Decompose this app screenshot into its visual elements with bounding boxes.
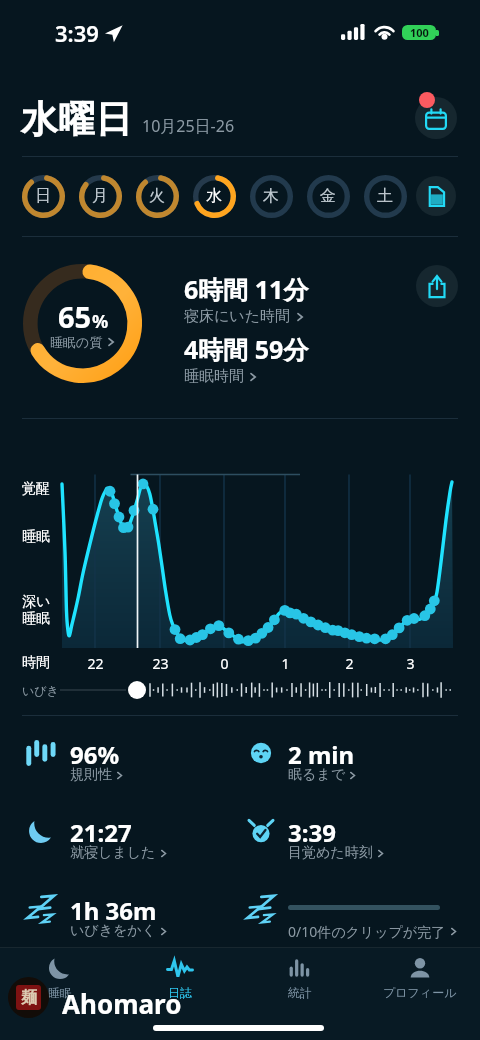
staticText: % [92, 309, 109, 334]
button[interactable]: 睡眠 [10, 956, 110, 1006]
button[interactable]: Notes [410, 170, 462, 222]
staticText: 22 [87, 654, 104, 673]
staticText: 0/10件のクリップが完了 [288, 922, 446, 941]
staticText: 4時間 59分 [184, 332, 309, 366]
staticText: 金 [320, 186, 336, 206]
staticText: 睡眠時間 [184, 367, 244, 386]
staticText: 1 [281, 654, 290, 673]
button[interactable]: 木 [245, 170, 297, 222]
button[interactable]: Share [416, 265, 458, 307]
staticText: 10月25日-26 [142, 115, 235, 137]
button[interactable]: 2 min [240, 725, 480, 797]
staticText: 時間 [22, 654, 50, 672]
button[interactable]: 21:27 [0, 803, 240, 875]
staticText: 水 [206, 186, 222, 206]
staticText: 麺 [21, 988, 37, 1008]
staticText: 土 [377, 186, 393, 206]
button[interactable]: 3:39 [240, 803, 480, 875]
staticText: 月 [92, 186, 108, 206]
staticText: 深い [22, 593, 51, 611]
staticText: 木 [263, 186, 279, 206]
staticText: 3 [406, 654, 415, 673]
button[interactable]: Play snoring audio [128, 681, 146, 699]
staticText: プロフィール [383, 985, 457, 1000]
staticText: 3:39 [288, 816, 336, 849]
button[interactable]: Calendar [415, 97, 457, 139]
staticText: 就寝しました [70, 844, 156, 862]
staticText: 統計 [288, 985, 312, 1000]
button[interactable]: 日誌 [130, 956, 230, 1006]
staticText: 2 [345, 654, 354, 673]
staticText: 21:27 [70, 816, 132, 849]
button[interactable]: 土 [359, 170, 411, 222]
button[interactable]: 月 [74, 170, 126, 222]
staticText: 眠るまで [288, 766, 345, 784]
staticText: 6時間 11分 [184, 272, 309, 306]
staticText: 100 [410, 25, 429, 40]
staticText: 睡眠 [22, 528, 50, 546]
staticText: 日 [35, 186, 51, 206]
button[interactable]: 日 [17, 170, 69, 222]
staticText: 96% [70, 738, 120, 771]
staticText: 日誌 [168, 985, 192, 1000]
staticText: 睡眠 [48, 985, 72, 1000]
button[interactable]: 96% [0, 725, 240, 797]
staticText: 水曜日 [21, 96, 132, 143]
staticText: 65 [58, 297, 92, 336]
button[interactable]: 0/10件のクリップが完了 [240, 881, 480, 953]
staticText: 2 min [288, 738, 355, 771]
staticText: いびき [22, 683, 59, 698]
button[interactable]: 火 [131, 170, 183, 222]
staticText: 0 [220, 654, 229, 673]
button[interactable]: 1h 36m [0, 881, 240, 953]
staticText: 23 [152, 654, 169, 673]
staticText: 睡眠の質 [50, 334, 103, 350]
button[interactable]: 4時間 59分 [184, 332, 309, 385]
staticText: 寝床にいた時間 [184, 307, 291, 326]
button[interactable]: プロフィール [370, 956, 470, 1006]
staticText: Ahomaro [62, 986, 182, 1021]
staticText: 火 [149, 186, 165, 206]
button[interactable]: 統計 [250, 956, 350, 1006]
staticText: 睡眠 [22, 610, 50, 628]
button[interactable]: 65 [23, 264, 142, 383]
staticText: 目覚めた時刻 [288, 844, 373, 862]
button[interactable]: 水 [188, 170, 240, 222]
staticText: 1h 36m [70, 894, 157, 927]
staticText: 覚醒 [22, 480, 50, 498]
staticText: いびきをかく [70, 922, 156, 940]
button[interactable]: 6時間 11分 [184, 272, 309, 325]
staticText: 3:39 [55, 18, 99, 48]
button[interactable]: 金 [302, 170, 354, 222]
staticText: 規則性 [70, 766, 112, 784]
